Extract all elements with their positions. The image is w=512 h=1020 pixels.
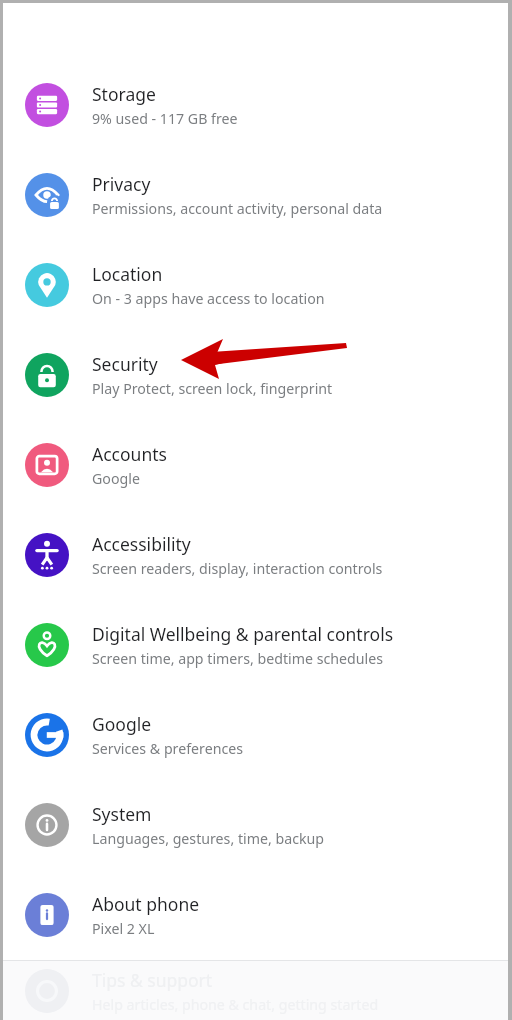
- staticText: About phone: [92, 892, 200, 916]
- staticText: Screen readers, display, interaction con…: [92, 559, 383, 578]
- button[interactable]: About phone: [3, 870, 508, 960]
- button[interactable]: Google: [3, 690, 508, 780]
- staticText: 9% used - 117 GB free: [92, 109, 238, 128]
- staticText: Tips & support: [92, 968, 213, 992]
- staticText: Digital Wellbeing & parental controls: [92, 622, 394, 646]
- staticText: Screen time, app timers, bedtime schedul…: [92, 649, 383, 668]
- button[interactable]: Accessibility: [3, 510, 508, 600]
- staticText: Languages, gestures, time, backup: [92, 829, 325, 848]
- staticText: Pixel 2 XL: [92, 919, 155, 938]
- staticText: On - 3 apps have access to location: [92, 289, 325, 308]
- staticText: System: [92, 802, 152, 826]
- staticText: Permissions, account activity, personal …: [92, 199, 383, 218]
- button[interactable]: Privacy: [3, 150, 508, 240]
- staticText: Location: [92, 262, 163, 286]
- button[interactable]: Storage: [3, 60, 508, 150]
- button[interactable]: Accounts: [3, 420, 508, 510]
- staticText: Help articles, phone & chat, getting sta…: [92, 995, 379, 1014]
- button[interactable]: System: [3, 780, 508, 870]
- staticText: Services & preferences: [92, 739, 244, 758]
- staticText: Storage: [92, 82, 156, 106]
- staticText: Security: [92, 352, 158, 376]
- staticText: Google: [92, 712, 152, 736]
- staticText: Privacy: [92, 172, 151, 196]
- staticText: Accessibility: [92, 532, 191, 556]
- staticText: Google: [92, 469, 140, 488]
- button[interactable]: Security: [3, 330, 508, 420]
- button[interactable]: Location: [3, 240, 508, 330]
- button[interactable]: Digital Wellbeing & parental controls: [3, 600, 508, 690]
- staticText: Accounts: [92, 442, 167, 466]
- staticText: Play Protect, screen lock, fingerprint: [92, 379, 333, 398]
